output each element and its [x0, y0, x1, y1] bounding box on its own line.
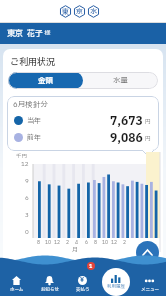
staticText: 当年 — [27, 116, 41, 126]
staticText: 0 — [25, 228, 29, 237]
staticText: 様 — [43, 29, 51, 38]
staticText: 円 — [145, 135, 152, 144]
button[interactable]: 6月検針分 — [7, 96, 159, 151]
button[interactable]: ¥ — [66, 272, 99, 296]
staticText: 千円 — [16, 152, 28, 160]
button[interactable]: 東京 花子 — [0, 23, 166, 44]
staticText: 前年 — [27, 133, 41, 143]
staticText: 京 — [76, 7, 83, 17]
staticText: 東京 花子 — [7, 28, 43, 40]
staticText: メニュー — [141, 286, 159, 293]
button[interactable]: ホーム — [0, 272, 33, 296]
staticText: 4 — [75, 239, 79, 246]
button[interactable] — [136, 241, 159, 264]
staticText: 2 — [66, 239, 70, 246]
staticText: 水 — [90, 7, 97, 17]
staticText: 支払う — [76, 286, 90, 293]
staticText: 8 — [37, 239, 41, 246]
staticText: 2 — [123, 239, 127, 246]
button[interactable]: お知らせ — [33, 272, 66, 296]
button[interactable]: メニュー — [133, 272, 166, 296]
staticText: 9 — [25, 177, 29, 186]
staticText: ご利用状況 — [10, 55, 56, 68]
staticText: 9,086 — [110, 130, 143, 145]
button[interactable]: 利用履歴 — [102, 268, 130, 296]
staticText: 12 — [54, 239, 61, 246]
staticText: 12 — [21, 160, 29, 169]
staticText: 10 — [102, 239, 109, 246]
staticText: 1 — [89, 263, 93, 270]
staticText: 東 — [62, 7, 69, 17]
staticText: 6 — [85, 239, 89, 246]
staticText: 10 — [45, 239, 52, 246]
staticText: 3 — [25, 211, 29, 220]
staticText: ホーム — [10, 286, 24, 293]
staticText: 12 — [111, 239, 118, 246]
staticText: 6月検針分 — [13, 99, 48, 110]
staticText: 月 — [72, 246, 79, 255]
staticText: 水量 — [113, 75, 128, 86]
button[interactable]: 金額 — [8, 72, 83, 89]
staticText: 利用履歴 — [107, 283, 125, 290]
button[interactable]: 水量 — [83, 72, 158, 89]
staticText: 8 — [94, 239, 98, 246]
staticText: 円 — [145, 118, 152, 127]
staticText: 6 — [25, 194, 29, 203]
staticText: 7,673 — [110, 113, 143, 128]
staticText: お知らせ — [41, 286, 59, 293]
staticText: 金額 — [38, 75, 53, 86]
staticText: ¥ — [80, 276, 85, 285]
